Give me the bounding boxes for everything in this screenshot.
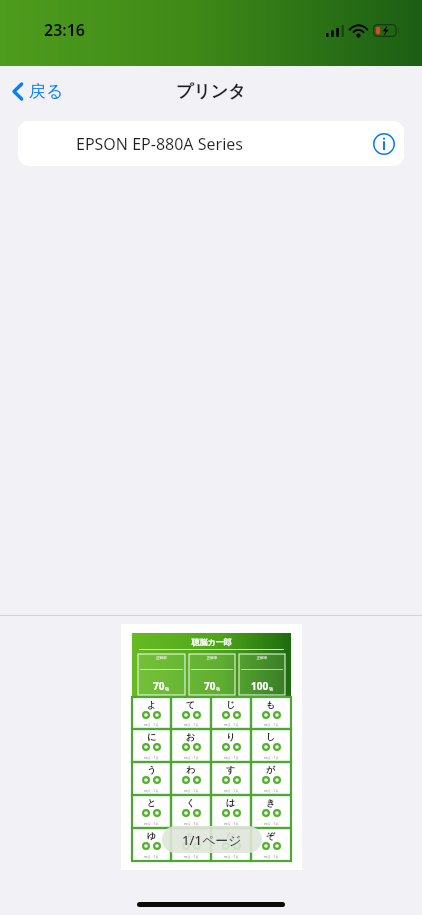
staticText: お — [186, 731, 196, 742]
staticText: と — [147, 797, 157, 808]
staticText: 得点：1点 — [264, 855, 279, 859]
button[interactable]: 戻る — [0, 75, 74, 108]
staticText: に — [147, 731, 157, 742]
button[interactable]: 聴脳カー郎 — [121, 624, 302, 870]
staticText: す — [226, 764, 236, 775]
staticText: ゆ — [147, 830, 157, 841]
staticText: 得点：1点 — [184, 723, 199, 727]
staticText: り — [226, 731, 236, 742]
staticText: 得点：1点 — [184, 789, 199, 793]
staticText: き — [266, 797, 276, 808]
staticText: 100 — [251, 679, 269, 693]
staticText: 正解率 — [191, 656, 233, 660]
staticText: % — [216, 686, 221, 693]
staticText: 1/1ページ — [182, 831, 242, 849]
staticText: 得点：1点 — [264, 756, 279, 760]
staticText: 得点：1点 — [184, 855, 199, 859]
staticText: が — [266, 764, 276, 775]
staticText: 得点：1点 — [144, 789, 159, 793]
staticText: し — [266, 731, 276, 742]
staticText: 得点：1点 — [224, 756, 239, 760]
staticText: 70 — [153, 679, 165, 693]
staticText: 得点：1点 — [144, 855, 159, 859]
staticText: 23:16 — [44, 19, 86, 41]
staticText: よ — [147, 699, 157, 710]
staticText: ち — [186, 830, 196, 841]
staticText: 得点：1点 — [224, 789, 239, 793]
staticText: 得点：1点 — [144, 756, 159, 760]
staticText: な — [226, 830, 236, 841]
staticText: 得点：1点 — [144, 822, 159, 826]
staticText: 得点：1点 — [224, 822, 239, 826]
staticText: 得点：1点 — [264, 822, 279, 826]
staticText: も — [266, 699, 276, 710]
staticText: 正解率 — [140, 656, 183, 660]
staticText: 得点：1点 — [184, 822, 199, 826]
staticText: EPSON EP-880A Series — [76, 133, 243, 155]
staticText: て — [186, 699, 196, 710]
staticText: 得点：1点 — [224, 723, 239, 727]
staticText: 戻る — [29, 81, 64, 102]
staticText: ぞ — [266, 830, 276, 841]
button[interactable]: EPSON EP-880A Series — [18, 121, 404, 166]
staticText: じ — [226, 699, 236, 710]
staticText: わ — [186, 764, 196, 775]
staticText: 70 — [204, 679, 216, 693]
staticText: % — [269, 686, 274, 693]
staticText: う — [147, 764, 157, 775]
staticText: 得点：1点 — [224, 855, 239, 859]
staticText: 聴脳カー郎 — [132, 637, 291, 647]
staticText: 得点：1点 — [144, 723, 159, 727]
staticText: 得点：1点 — [184, 756, 199, 760]
staticText: プリンタ — [176, 81, 246, 102]
staticText: 得点：1点 — [264, 789, 279, 793]
button[interactable]: Printer information — [364, 124, 404, 164]
staticText: は — [226, 797, 236, 808]
staticText: く — [186, 797, 196, 808]
staticText: % — [165, 686, 170, 693]
staticText: 得点：1点 — [264, 723, 279, 727]
staticText: 正解率 — [241, 656, 283, 660]
